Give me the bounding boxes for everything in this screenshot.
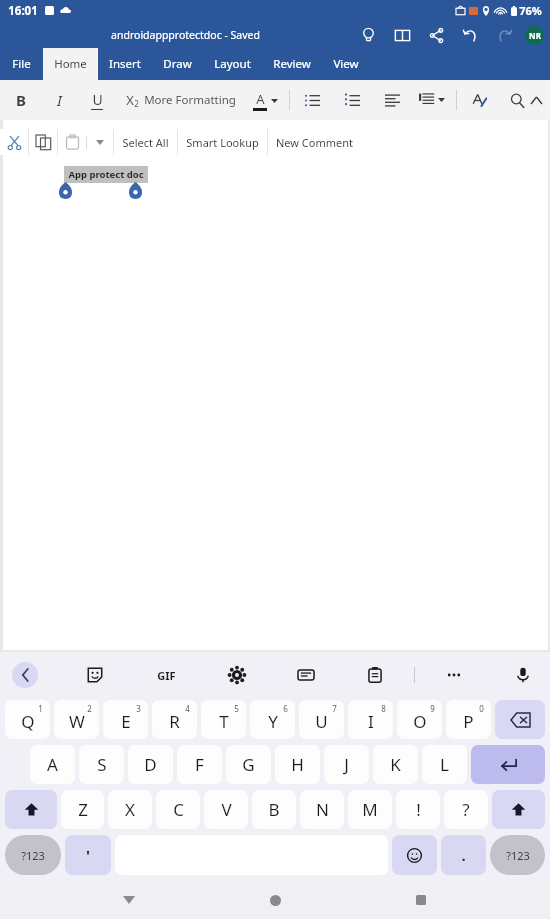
staticText: X bbox=[126, 91, 134, 109]
button[interactable]: GIF bbox=[151, 663, 181, 687]
staticText: 7 bbox=[332, 703, 337, 714]
button[interactable]: Italic bbox=[48, 89, 70, 111]
button[interactable]: N bbox=[300, 790, 344, 829]
button[interactable]: L bbox=[422, 745, 467, 784]
button[interactable]: I bbox=[348, 700, 393, 739]
button[interactable]: J bbox=[324, 745, 369, 784]
button[interactable]: Emoji bbox=[392, 835, 437, 875]
button[interactable]: Font color bbox=[253, 90, 278, 111]
button[interactable]: D bbox=[128, 745, 173, 784]
staticText: ! bbox=[416, 798, 421, 821]
button[interactable]: H bbox=[275, 745, 320, 784]
button[interactable]: Account bbox=[525, 26, 544, 45]
button[interactable]: Text editing bbox=[293, 662, 319, 688]
button[interactable]: Home bbox=[258, 883, 292, 917]
staticText: Draw bbox=[163, 56, 192, 72]
button[interactable]: Z bbox=[61, 790, 104, 829]
button[interactable]: . bbox=[441, 835, 486, 875]
button[interactable]: More paste options bbox=[87, 129, 113, 155]
button[interactable]: Search bbox=[506, 89, 528, 111]
button[interactable]: Settings bbox=[224, 662, 250, 688]
button[interactable]: Enter bbox=[471, 745, 545, 784]
button[interactable]: Select All bbox=[114, 129, 177, 155]
button[interactable]: M bbox=[348, 790, 392, 829]
button[interactable]: Numbered list bbox=[341, 89, 363, 111]
button[interactable]: Review bbox=[262, 48, 322, 80]
button[interactable]: ' bbox=[65, 835, 111, 875]
button[interactable]: Shift bbox=[492, 790, 545, 829]
staticText: ?123 bbox=[506, 848, 530, 863]
button[interactable]: Share bbox=[424, 23, 448, 47]
button[interactable]: ! bbox=[396, 790, 440, 829]
staticText: ?123 bbox=[21, 848, 45, 863]
button[interactable]: Home bbox=[43, 48, 98, 80]
button[interactable]: Recents bbox=[404, 883, 438, 917]
button[interactable]: Insert bbox=[98, 48, 152, 80]
button[interactable]: Redo bbox=[492, 23, 516, 47]
button[interactable]: Clipboard bbox=[362, 662, 388, 688]
button[interactable]: S bbox=[79, 745, 124, 784]
staticText: Layout bbox=[214, 56, 251, 72]
staticText: GIF bbox=[157, 668, 176, 683]
staticText: Q bbox=[21, 710, 35, 733]
button[interactable]: Voice input bbox=[510, 662, 536, 688]
button[interactable]: Align left bbox=[381, 89, 403, 111]
staticText: Smart Lookup bbox=[186, 135, 259, 150]
button[interactable]: C bbox=[156, 790, 200, 829]
button[interactable]: X bbox=[108, 790, 152, 829]
staticText: 5 bbox=[234, 703, 239, 714]
button[interactable]: Format painter bbox=[468, 89, 490, 111]
button[interactable]: File bbox=[0, 48, 43, 80]
button[interactable]: Back bbox=[12, 662, 38, 688]
button[interactable]: Tell me what you want to do bbox=[356, 23, 380, 47]
button[interactable]: V bbox=[204, 790, 248, 829]
staticText: S bbox=[97, 753, 107, 776]
button[interactable]: Y bbox=[250, 700, 295, 739]
button[interactable]: A bbox=[30, 745, 75, 784]
button[interactable]: Back bbox=[112, 883, 146, 917]
button[interactable]: W bbox=[54, 700, 99, 739]
button[interactable]: ?123 bbox=[490, 835, 545, 875]
staticText: NR bbox=[529, 30, 541, 41]
button[interactable]: Draw bbox=[152, 48, 203, 80]
button[interactable]: ?123 bbox=[5, 835, 61, 875]
button[interactable]: Underline bbox=[86, 89, 108, 111]
staticText: L bbox=[440, 753, 449, 776]
button[interactable]: Undo bbox=[458, 23, 482, 47]
button[interactable]: Paragraph bbox=[419, 92, 445, 108]
button[interactable]: O bbox=[397, 700, 442, 739]
button[interactable]: R bbox=[152, 700, 197, 739]
button[interactable]: F bbox=[177, 745, 222, 784]
staticText: I bbox=[57, 90, 62, 110]
staticText: E bbox=[121, 710, 131, 733]
button[interactable]: Layout bbox=[203, 48, 262, 80]
button[interactable]: P bbox=[446, 700, 491, 739]
button[interactable]: Cut bbox=[0, 129, 28, 155]
staticText: U bbox=[92, 90, 103, 109]
button[interactable]: Backspace bbox=[495, 700, 545, 739]
staticText: File bbox=[12, 56, 31, 72]
button[interactable]: Bold bbox=[10, 89, 32, 111]
button[interactable]: X bbox=[124, 91, 238, 109]
button[interactable]: New Comment bbox=[268, 129, 361, 155]
button[interactable]: ? bbox=[444, 790, 488, 829]
staticText: 0 bbox=[479, 703, 484, 714]
button[interactable]: Smart Lookup bbox=[178, 129, 267, 155]
button[interactable]: Read mode bbox=[390, 23, 414, 47]
button[interactable]: View bbox=[322, 48, 370, 80]
button[interactable]: More options bbox=[441, 662, 467, 688]
button[interactable]: G bbox=[226, 745, 271, 784]
button[interactable]: Bulleted list bbox=[301, 89, 323, 111]
button[interactable]: Q bbox=[5, 700, 50, 739]
button[interactable]: E bbox=[103, 700, 148, 739]
button[interactable]: Copy bbox=[29, 129, 57, 155]
button[interactable]: T bbox=[201, 700, 246, 739]
button[interactable]: Paste bbox=[58, 129, 86, 155]
button[interactable]: Collapse ribbon bbox=[528, 88, 544, 112]
button[interactable]: Stickers bbox=[82, 662, 108, 688]
button[interactable]: Shift bbox=[5, 790, 57, 829]
button[interactable]: B bbox=[252, 790, 296, 829]
button[interactable]: U bbox=[299, 700, 344, 739]
button[interactable]: K bbox=[373, 745, 418, 784]
